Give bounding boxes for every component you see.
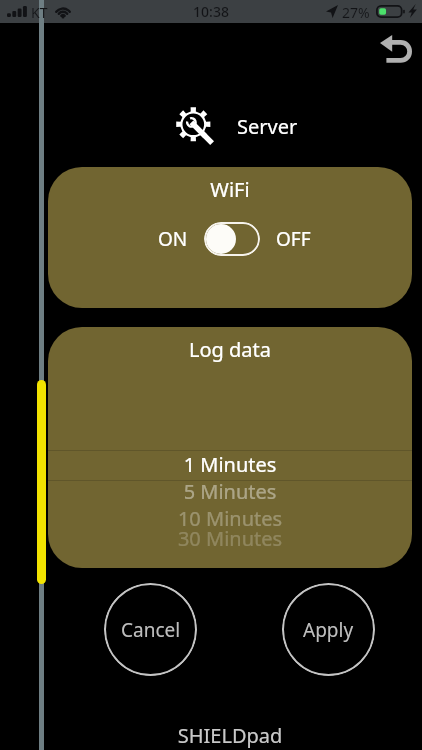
staticText: OFF: [276, 226, 311, 252]
staticText: ON: [158, 226, 188, 252]
staticText: Apply: [303, 617, 354, 643]
staticText: Cancel: [121, 617, 181, 643]
staticText: 27%: [342, 3, 370, 22]
staticText: 30 Minutes: [48, 525, 412, 552]
button[interactable]: Cancel: [104, 583, 197, 676]
staticText: Server: [237, 113, 298, 140]
button[interactable]: Apply: [282, 583, 375, 676]
staticText: 10 Minutes: [48, 505, 412, 532]
staticText: 1 Minutes: [48, 451, 412, 478]
staticText: SHIELDpad: [48, 722, 412, 749]
staticText: 10:38: [0, 2, 422, 21]
button[interactable]: Back: [373, 26, 419, 72]
button[interactable]: WiFi toggle: [204, 222, 260, 256]
staticText: Log data: [48, 336, 412, 363]
staticText: KT: [31, 3, 48, 22]
staticText: WiFi: [48, 176, 412, 203]
staticText: 5 Minutes: [48, 478, 412, 505]
